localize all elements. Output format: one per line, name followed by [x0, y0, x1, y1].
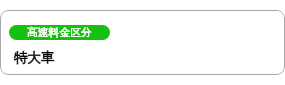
- staticText: 高速料金区分: [27, 26, 92, 40]
- button[interactable]: 高速料金区分: [0, 10, 285, 75]
- staticText: 特大車: [14, 49, 55, 66]
- staticText: 高速料金区分: [27, 26, 92, 40]
- staticText: 特大車: [14, 49, 55, 66]
